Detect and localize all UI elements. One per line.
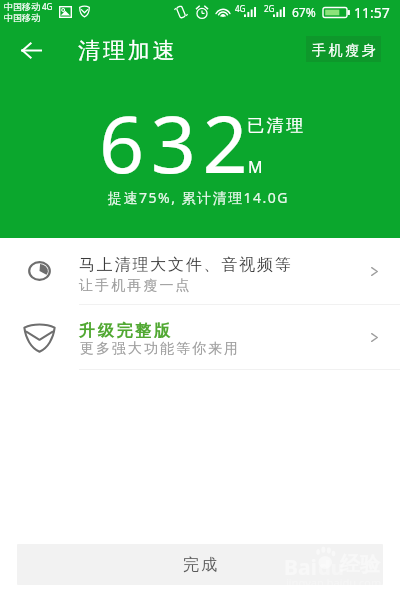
staticText: 更多强大功能等你来用 [79, 340, 239, 358]
staticText: 升级完整版 [79, 321, 173, 341]
staticText: 2G [264, 3, 275, 14]
staticText: 4G [42, 1, 53, 12]
staticText: 632 [99, 89, 255, 197]
staticText: 让手机再瘦一点 [79, 277, 192, 295]
staticText: 中国移动 [4, 1, 40, 12]
button[interactable]: 马上清理大文件、音视频等 [0, 238, 400, 304]
staticText: 11:57 [354, 3, 390, 22]
staticText: 67% [292, 4, 316, 20]
staticText: M [248, 156, 263, 178]
button[interactable]: Back [8, 27, 54, 73]
staticText: 中国移动 [4, 12, 40, 23]
staticText: 手机瘦身 [312, 42, 379, 60]
button[interactable]: 升级完整版 [0, 305, 400, 369]
staticText: 已清理 [247, 115, 306, 136]
staticText: 马上清理大文件、音视频等 [79, 255, 293, 275]
button[interactable]: 手机瘦身 [306, 36, 381, 62]
button[interactable]: 完成 [17, 544, 383, 585]
staticText: 清理加速 [78, 37, 178, 65]
staticText: jingyan.baidu.com [286, 575, 382, 590]
staticText: 4G [235, 3, 246, 14]
staticText: 完成 [182, 555, 218, 575]
staticText: 提速75%, 累计清理14.0G [108, 188, 290, 207]
